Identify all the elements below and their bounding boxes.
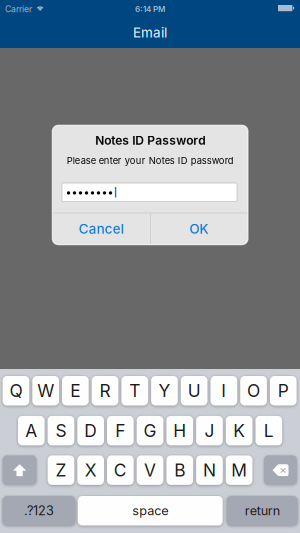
button[interactable]: L: [255, 416, 282, 445]
staticText: ••••••••: [66, 186, 114, 199]
button[interactable]: F: [107, 416, 134, 445]
staticText: Y: [158, 380, 170, 401]
staticText: M: [231, 460, 247, 481]
staticText: X: [85, 460, 97, 481]
button[interactable]: G: [137, 416, 163, 445]
button[interactable]: Y: [151, 376, 178, 405]
staticText: Z: [55, 460, 66, 481]
staticText: D: [84, 420, 97, 441]
staticText: G: [143, 420, 156, 441]
staticText: O: [247, 380, 260, 401]
button[interactable]: O: [240, 376, 267, 405]
button[interactable]: U: [181, 376, 207, 405]
staticText: Email: [133, 25, 167, 41]
button[interactable]: T: [121, 376, 148, 405]
staticText: W: [37, 380, 54, 401]
button[interactable]: I: [210, 376, 237, 405]
staticText: Notes ID Password: [95, 133, 205, 147]
staticText: U: [188, 380, 201, 401]
staticText: Carrier: [5, 4, 32, 14]
staticText: OK: [189, 221, 208, 237]
staticText: 6:14 PM: [135, 4, 165, 14]
button[interactable]: return: [227, 496, 298, 525]
staticText: A: [25, 420, 37, 441]
staticText: E: [70, 380, 80, 401]
button[interactable]: Delete: [264, 455, 297, 485]
staticText: I: [221, 380, 226, 401]
button[interactable]: M: [226, 455, 252, 485]
staticText: Cancel: [79, 221, 124, 237]
button[interactable]: E: [62, 376, 89, 405]
button[interactable]: N: [196, 455, 223, 485]
button[interactable]: A: [18, 416, 45, 445]
staticText: V: [144, 460, 156, 481]
staticText: return: [245, 503, 280, 518]
staticText: B: [174, 460, 185, 481]
staticText: P: [278, 380, 289, 401]
staticText: K: [233, 420, 245, 441]
button[interactable]: .?123: [3, 496, 75, 525]
button[interactable]: Shift: [3, 455, 37, 485]
button[interactable]: space: [78, 496, 223, 525]
button[interactable]: W: [32, 376, 59, 405]
button[interactable]: K: [226, 416, 252, 445]
staticText: L: [264, 420, 274, 441]
staticText: C: [114, 460, 127, 481]
staticText: Q: [9, 380, 22, 401]
button[interactable]: J: [196, 416, 223, 445]
staticText: J: [204, 420, 214, 441]
button[interactable]: S: [48, 416, 74, 445]
button[interactable]: C: [107, 455, 134, 485]
staticText: S: [55, 420, 66, 441]
staticText: F: [115, 420, 125, 441]
staticText: H: [173, 420, 186, 441]
button[interactable]: Q: [3, 376, 29, 405]
staticText: Please enter your Notes ID password: [67, 155, 234, 166]
button[interactable]: Cancel: [52, 213, 150, 245]
button[interactable]: X: [77, 455, 104, 485]
button[interactable]: OK: [150, 213, 248, 245]
button[interactable]: P: [270, 376, 297, 405]
button[interactable]: D: [77, 416, 104, 445]
button[interactable]: B: [166, 455, 193, 485]
staticText: .?123: [24, 503, 54, 518]
button[interactable]: R: [92, 376, 118, 405]
staticText: R: [99, 380, 110, 401]
button[interactable]: V: [137, 455, 163, 485]
button[interactable]: H: [166, 416, 193, 445]
staticText: space: [132, 503, 168, 518]
staticText: T: [129, 380, 140, 401]
button[interactable]: Z: [48, 455, 74, 485]
staticText: N: [203, 460, 216, 481]
